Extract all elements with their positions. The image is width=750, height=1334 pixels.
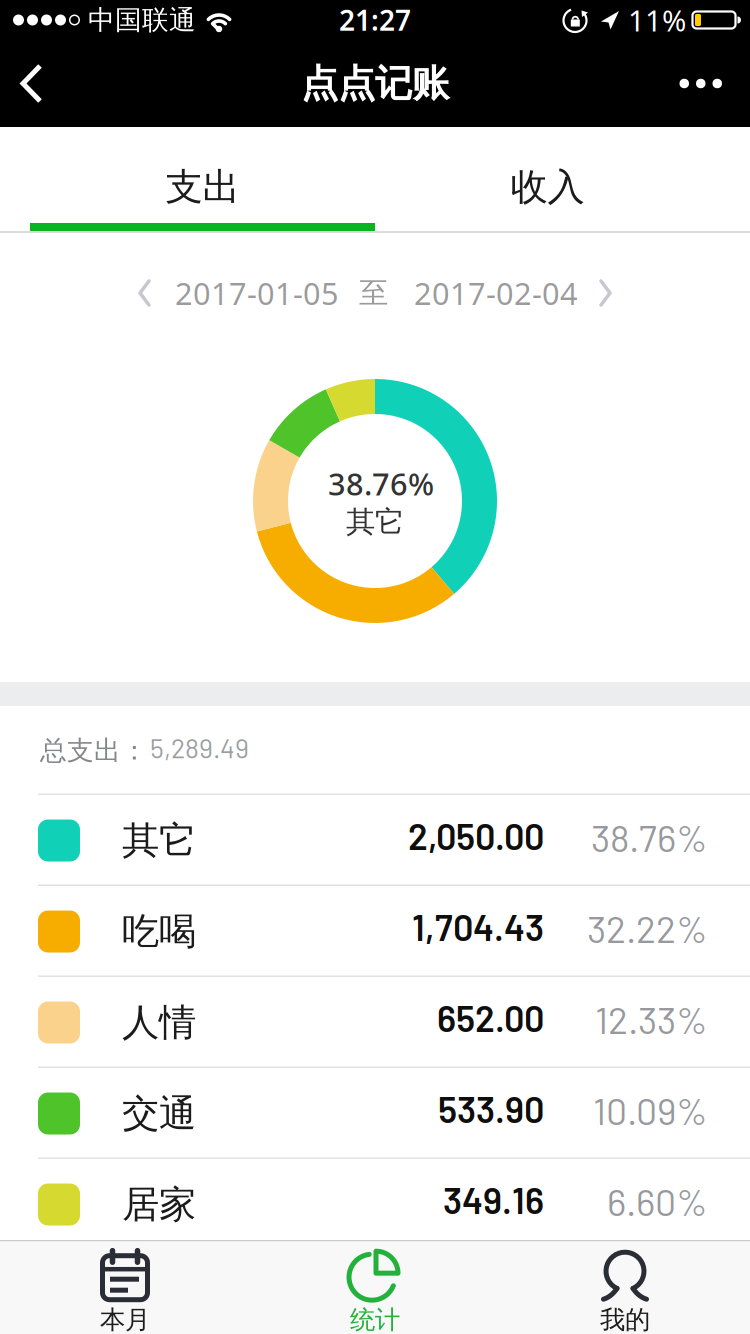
staticText: 10.09% [593,1088,708,1132]
staticText: 5,289.49 [150,731,249,763]
staticText: 2017-02-04 [414,273,578,313]
staticText: 其它 [122,818,196,863]
button[interactable]: 支出 [30,127,375,223]
staticText: 349.16 [443,1178,544,1221]
staticText: 2017-01-05 [175,273,339,313]
staticText: 32.22% [587,906,708,950]
staticText: 其它 [346,504,404,540]
staticText: 点点记账 [301,61,449,106]
button[interactable]: 收入 [375,127,720,223]
button[interactable]: 居家 [0,1159,750,1250]
button[interactable]: 统计 [250,1241,500,1334]
staticText: 2,050.00 [408,814,544,857]
staticText: 至 [359,275,388,311]
staticText: 本月 [100,1304,150,1334]
staticText: 人情 [122,1000,196,1045]
button[interactable]: 其它 [0,795,750,886]
button[interactable]: 交通 [0,1068,750,1159]
staticText: 652.00 [437,996,544,1039]
button[interactable]: Next period [588,269,623,317]
button[interactable]: Back [0,40,56,127]
staticText: 38.76% [328,463,434,504]
staticText: 533.90 [438,1087,544,1130]
button[interactable]: 本月 [0,1241,250,1334]
staticText: 总支出： [40,734,148,767]
staticText: 21:27 [339,1,411,39]
staticText: 交通 [122,1091,196,1136]
staticText: 11% [628,0,686,39]
staticText: 6.60% [607,1179,708,1223]
staticText: 12.33% [595,997,708,1041]
button[interactable]: Previous period [127,269,162,317]
button[interactable]: More [667,40,750,127]
staticText: 1,704.43 [412,905,544,948]
staticText: 居家 [122,1182,196,1227]
button[interactable]: 吃喝 [0,886,750,977]
staticText: 中国联通 [88,4,196,36]
button[interactable]: 人情 [0,977,750,1068]
staticText: 统计 [350,1304,400,1334]
staticText: 38.76% [591,815,708,859]
staticText: 吃喝 [122,909,196,954]
staticText: 收入 [510,164,584,210]
staticText: 支出 [165,164,239,210]
staticText: 我的 [600,1304,650,1334]
button[interactable]: 我的 [500,1241,750,1334]
